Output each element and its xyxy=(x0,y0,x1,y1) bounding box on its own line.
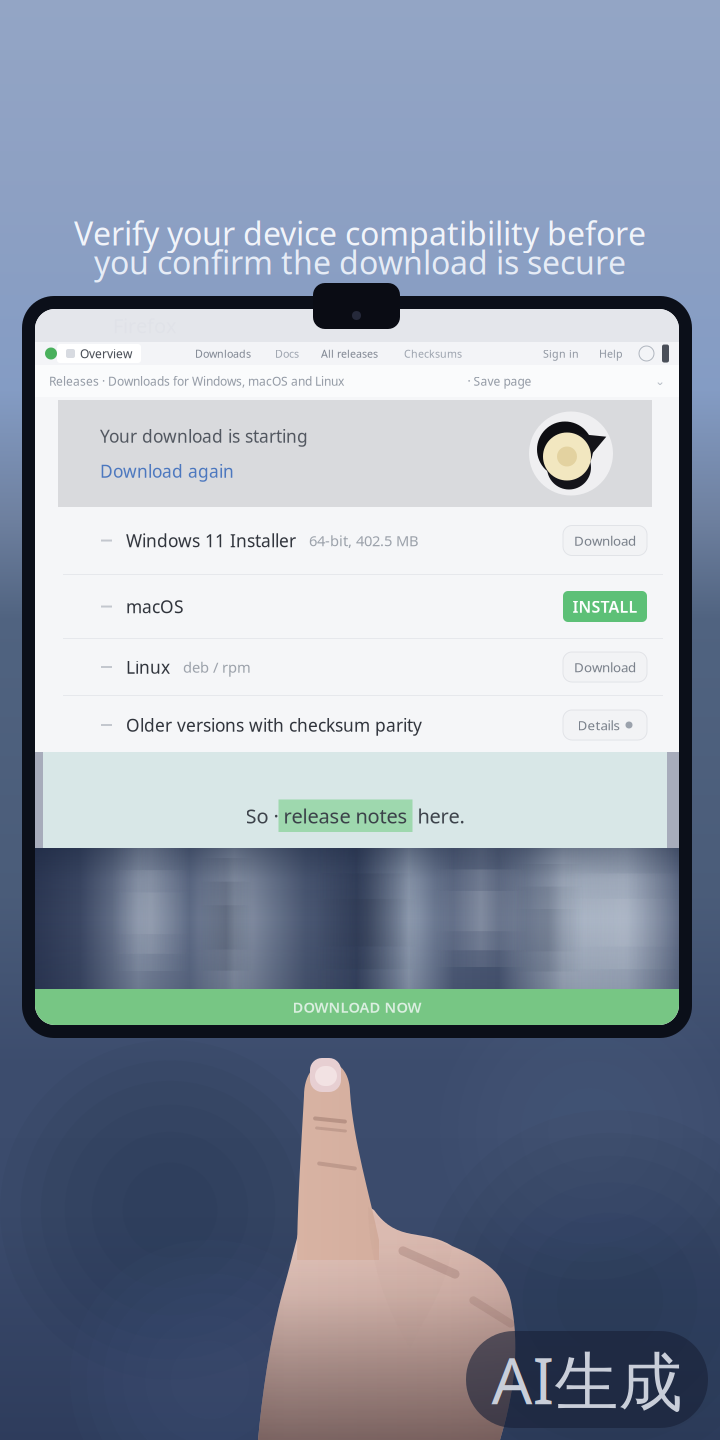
staticText: Details xyxy=(577,716,619,734)
staticText: · Save page xyxy=(467,373,531,389)
staticText: Older versions with checksum parity xyxy=(126,713,422,736)
staticText: ⌄ xyxy=(655,374,665,388)
staticText: Download again xyxy=(100,459,234,482)
staticText: Download xyxy=(574,658,636,676)
button[interactable]: Reload xyxy=(639,346,654,361)
staticText: Help xyxy=(599,346,623,361)
staticText: you confirm the download is secure xyxy=(94,241,626,283)
button[interactable]: Linux xyxy=(35,639,679,695)
staticText: macOS xyxy=(126,595,184,618)
staticText: deb / rpm xyxy=(183,657,251,677)
staticText: Releases · Downloads for Windows, macOS … xyxy=(49,373,344,389)
staticText: Checksums xyxy=(404,346,462,361)
staticText: DOWNLOAD NOW xyxy=(292,997,421,1017)
staticText: Downloads xyxy=(195,346,251,361)
staticText: All releases xyxy=(321,346,378,361)
button[interactable]: Overview xyxy=(57,344,141,363)
staticText: Windows 11 Installer xyxy=(126,529,296,552)
staticText: here. xyxy=(412,802,464,829)
staticText: So · xyxy=(245,802,278,829)
staticText: Your download is starting xyxy=(100,424,308,447)
staticText: INSTALL xyxy=(572,596,637,617)
button[interactable]: Download again xyxy=(100,459,234,482)
staticText: Sign in xyxy=(543,346,579,361)
button[interactable]: DOWNLOAD NOW xyxy=(35,989,679,1025)
staticText: Linux xyxy=(126,655,170,678)
staticText: 64-bit, 402.5 MB xyxy=(309,531,419,550)
staticText: AI生成 xyxy=(491,1337,682,1422)
staticText: Verify your device compatibility before xyxy=(74,212,646,254)
button[interactable]: macOS xyxy=(35,575,679,638)
staticText: release notes xyxy=(278,802,412,829)
staticText: Docs xyxy=(275,346,299,361)
staticText: Download xyxy=(574,532,636,549)
staticText: Overview xyxy=(80,345,132,361)
button[interactable]: Older versions with checksum parity xyxy=(35,696,679,754)
button[interactable]: Windows 11 Installer xyxy=(35,507,679,574)
